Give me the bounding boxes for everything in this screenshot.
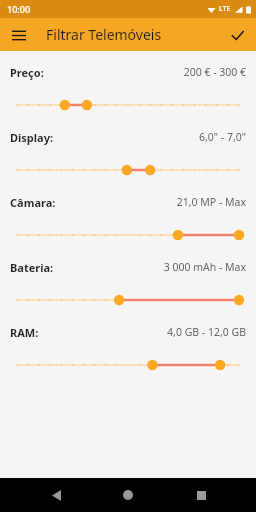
button[interactable]: Home [111, 478, 145, 512]
button[interactable]: Recent apps [184, 478, 218, 512]
button[interactable]: Back [39, 478, 73, 512]
staticText: Filtrar Telemóveis [46, 25, 162, 44]
staticText: 4,0 GB - 12,0 GB [167, 325, 246, 339]
button[interactable] [0, 342, 256, 387]
staticText: 10:00 [7, 3, 31, 15]
staticText: Display: [10, 130, 54, 145]
staticText: LTE [219, 4, 231, 14]
staticText: Preço: [10, 65, 44, 80]
button[interactable]: Menu [6, 22, 32, 48]
staticText: 3 000 mAh - Max [163, 260, 246, 274]
button[interactable] [0, 212, 256, 257]
staticText: Bateria: [10, 260, 54, 275]
staticText: RAM: [10, 325, 39, 340]
button[interactable] [0, 82, 256, 127]
staticText: Câmara: [10, 195, 56, 210]
button[interactable] [0, 277, 256, 322]
button[interactable]: Apply filters [224, 22, 250, 48]
staticText: 200 € - 300 € [183, 65, 246, 79]
button[interactable] [0, 147, 256, 192]
staticText: 21,0 MP - Max [176, 195, 246, 209]
staticText: 6,0" - 7,0" [198, 130, 246, 144]
